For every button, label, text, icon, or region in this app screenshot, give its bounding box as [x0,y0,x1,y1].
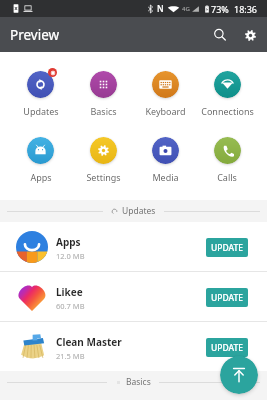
staticText: 73% [211,3,229,15]
staticText: Updates [23,105,59,117]
staticText: 60.7 MB [56,301,85,311]
button[interactable]: Apps [0,222,267,271]
staticText: Updates [122,205,156,217]
button[interactable]: Connections [196,68,258,117]
staticText: Clean Master [56,335,122,349]
staticText: Basics [90,105,117,117]
staticText: Keyboard [145,105,186,117]
staticText: Basics [126,376,151,388]
button[interactable]: Media [134,134,196,183]
button[interactable]: Updates [9,68,72,117]
staticText: 12.0 MB [56,251,85,261]
staticText: Media [152,171,179,183]
staticText: Likee [56,285,83,299]
staticText: 21.5 MB [56,351,85,361]
button[interactable]: Keyboard [134,68,196,117]
staticText: 18:36 [234,3,258,15]
button[interactable]: Likee [0,272,267,321]
staticText: Apps [56,235,81,249]
button[interactable]: Clean Master [0,322,267,371]
staticText: Apps [30,171,52,183]
staticText: Connections [201,105,254,117]
button[interactable]: Settings [72,134,134,183]
staticText: Calls [217,171,237,183]
button[interactable]: Update all [220,356,258,394]
staticText: UPDATE [211,242,243,254]
button[interactable]: Search [205,20,235,50]
button[interactable]: Calls [196,134,258,183]
staticText: UPDATE [211,342,243,354]
button[interactable]: UPDATE [206,238,248,257]
button[interactable]: UPDATE [206,338,248,357]
button[interactable]: Basics [72,68,134,117]
staticText: 4G [182,5,190,13]
button[interactable]: Apps [9,134,72,183]
staticText: UPDATE [211,292,243,304]
staticText: Settings [86,171,121,183]
button[interactable]: Settings [235,20,265,50]
staticText: Preview [10,26,60,44]
staticText: N [157,3,164,15]
button[interactable]: UPDATE [206,288,248,307]
